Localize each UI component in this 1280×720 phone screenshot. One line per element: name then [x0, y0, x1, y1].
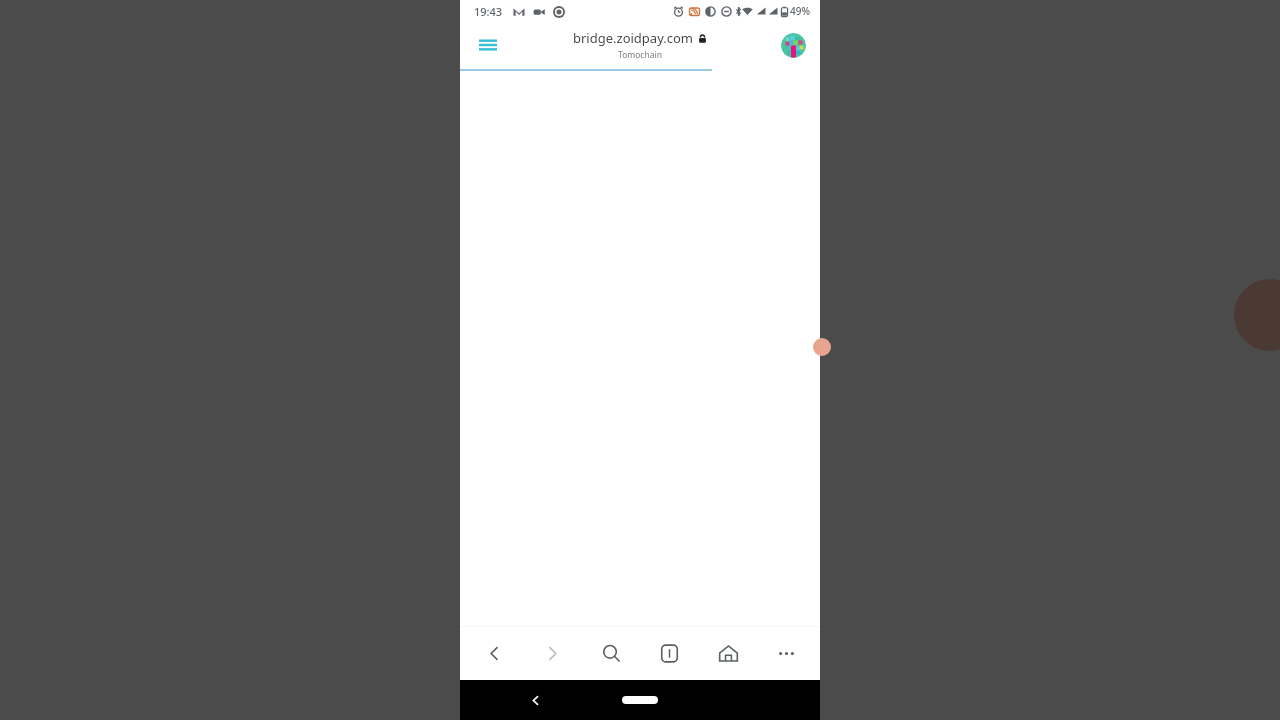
button[interactable]: Home — [610, 689, 670, 711]
button[interactable]: Forward — [532, 633, 572, 673]
button[interactable]: bridge.zoidpay.com — [573, 29, 707, 61]
button[interactable]: Back — [474, 633, 514, 673]
staticText: 19:43 — [474, 4, 503, 19]
staticText: 49% — [790, 4, 810, 18]
button[interactable]: Account — [778, 30, 808, 60]
button[interactable]: Menu — [472, 29, 504, 61]
button[interactable]: Tabs — [649, 633, 689, 673]
staticText: bridge.zoidpay.com — [573, 29, 693, 47]
button[interactable]: Back — [522, 687, 548, 713]
staticText: Tomochain — [618, 49, 662, 61]
button[interactable]: Search — [591, 633, 631, 673]
button[interactable]: Home — [708, 633, 748, 673]
button[interactable]: More options — [766, 633, 806, 673]
